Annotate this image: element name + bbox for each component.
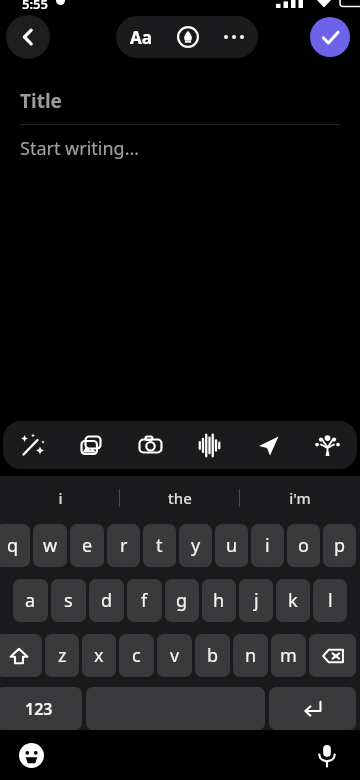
staticText: b xyxy=(207,643,219,668)
button[interactable]: u xyxy=(215,524,248,567)
staticText: i xyxy=(58,488,63,508)
button[interactable]: Enter xyxy=(269,687,356,730)
button[interactable]: q xyxy=(0,524,30,567)
button[interactable]: t xyxy=(143,524,176,567)
staticText: a xyxy=(25,588,36,613)
button[interactable]: h xyxy=(202,579,236,622)
button[interactable]: Shift xyxy=(0,634,42,677)
staticText: Title xyxy=(20,88,62,114)
staticText: f xyxy=(141,588,148,613)
button[interactable]: r xyxy=(107,524,140,567)
button[interactable]: Camera xyxy=(121,421,180,469)
staticText: k xyxy=(288,588,298,613)
staticText: w xyxy=(43,533,58,558)
staticText: d xyxy=(101,588,113,613)
button[interactable]: e xyxy=(70,524,104,567)
button[interactable]: m xyxy=(271,634,306,677)
button[interactable]: i'm xyxy=(240,476,360,520)
button[interactable]: the xyxy=(120,476,240,520)
staticText: i'm xyxy=(289,488,311,508)
button[interactable]: c xyxy=(119,634,154,677)
staticText: o xyxy=(298,533,309,558)
button[interactable]: Photos xyxy=(62,421,121,469)
button[interactable]: Title xyxy=(20,74,340,124)
staticText: 123 xyxy=(25,698,53,720)
button[interactable]: w xyxy=(33,524,67,567)
staticText: r xyxy=(120,533,128,558)
staticText: i xyxy=(265,533,270,558)
staticText: the xyxy=(168,488,192,508)
staticText: Aa xyxy=(130,26,152,49)
button[interactable]: n xyxy=(233,634,268,677)
button[interactable]: Emoji xyxy=(16,740,46,770)
button[interactable]: More options xyxy=(210,16,258,58)
button[interactable]: 123 xyxy=(0,687,82,730)
staticText: s xyxy=(64,588,73,613)
button[interactable]: a xyxy=(13,579,48,622)
staticText: c xyxy=(132,643,141,668)
button[interactable]: p xyxy=(323,524,356,567)
staticText: Start writing... xyxy=(20,136,140,161)
staticText: u xyxy=(226,533,238,558)
button[interactable]: Voice input xyxy=(312,740,342,770)
button[interactable]: x xyxy=(82,634,116,677)
button[interactable]: Done xyxy=(310,17,350,57)
staticText: n xyxy=(245,643,257,668)
staticText: p xyxy=(334,533,346,558)
button[interactable]: Send xyxy=(239,421,298,469)
button[interactable]: l xyxy=(313,579,347,622)
staticText: m xyxy=(280,643,297,668)
button[interactable]: Effects xyxy=(298,421,357,469)
button[interactable]: i xyxy=(251,524,284,567)
staticText: q xyxy=(7,533,19,558)
staticText: t xyxy=(156,533,163,558)
button[interactable]: v xyxy=(157,634,192,677)
button[interactable]: Audio xyxy=(180,421,239,469)
button[interactable]: k xyxy=(276,579,310,622)
staticText: v xyxy=(170,643,180,668)
button[interactable]: Start writing... xyxy=(20,125,340,161)
button[interactable]: j xyxy=(239,579,273,622)
button[interactable]: z xyxy=(45,634,79,677)
staticText: l xyxy=(328,588,333,613)
button[interactable]: Magic xyxy=(3,421,62,469)
button[interactable]: b xyxy=(195,634,230,677)
staticText: e xyxy=(82,533,93,558)
button[interactable]: d xyxy=(89,579,124,622)
staticText: z xyxy=(58,643,67,668)
staticText: y xyxy=(191,533,201,558)
button[interactable]: Highlight xyxy=(166,16,210,58)
button[interactable]: f xyxy=(127,579,162,622)
button[interactable]: s xyxy=(51,579,86,622)
button[interactable]: o xyxy=(287,524,320,567)
staticText: g xyxy=(176,588,188,613)
button[interactable]: Aa xyxy=(116,16,166,58)
button[interactable]: g xyxy=(165,579,199,622)
staticText: h xyxy=(213,588,225,613)
staticText: 5:55 xyxy=(22,0,48,9)
staticText: j xyxy=(254,588,259,613)
button[interactable]: y xyxy=(179,524,212,567)
button[interactable]: Back xyxy=(6,15,50,59)
button[interactable]: Backspace xyxy=(309,634,356,677)
button[interactable]: i xyxy=(0,476,120,520)
staticText: x xyxy=(94,643,104,668)
